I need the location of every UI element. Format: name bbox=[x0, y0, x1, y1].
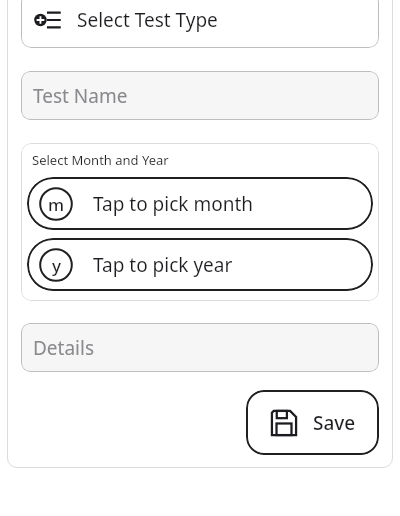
staticText: Tap to pick month bbox=[93, 191, 254, 217]
staticText: Details bbox=[33, 335, 95, 361]
button[interactable]: y bbox=[27, 238, 373, 291]
staticText: Save bbox=[313, 410, 356, 436]
staticText: Tap to pick year bbox=[93, 252, 233, 278]
button[interactable]: m bbox=[27, 177, 373, 230]
button[interactable]: Test Name bbox=[21, 71, 379, 120]
staticText: m bbox=[48, 193, 65, 216]
staticText: Select Month and Year bbox=[32, 151, 169, 169]
staticText: y bbox=[52, 254, 61, 277]
button[interactable]: Save bbox=[246, 390, 379, 455]
button[interactable]: Details bbox=[21, 323, 379, 372]
staticText: Select Test Type bbox=[77, 7, 218, 33]
button[interactable]: Select Test Type bbox=[21, 0, 379, 48]
staticText: Test Name bbox=[33, 83, 128, 109]
